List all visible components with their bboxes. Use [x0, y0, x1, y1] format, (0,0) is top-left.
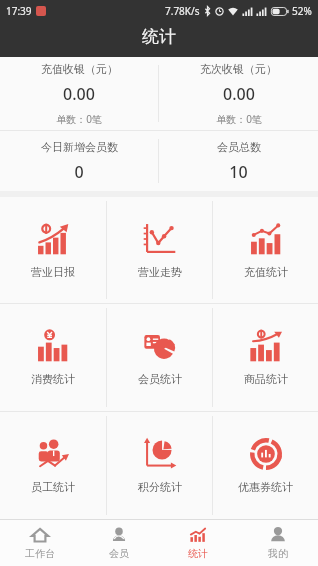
- staticText: 7.78K/s: [165, 4, 200, 18]
- staticText: 充值统计: [244, 265, 288, 279]
- staticText: 17:39: [6, 4, 32, 18]
- button[interactable]: 充值统计: [213, 197, 318, 303]
- staticText: 会员统计: [138, 372, 182, 386]
- staticText: 营业走势: [138, 265, 182, 279]
- staticText: 工作台: [25, 547, 55, 560]
- staticText: 0: [74, 161, 84, 183]
- button[interactable]: 今日新增会员数: [0, 131, 158, 191]
- button[interactable]: 统计: [158, 520, 238, 566]
- staticText: 我的: [268, 547, 288, 560]
- staticText: 充值收银（元）: [41, 62, 118, 76]
- button[interactable]: 商品统计: [213, 304, 318, 411]
- button[interactable]: 会员: [79, 520, 158, 566]
- button[interactable]: 优惠券统计: [213, 412, 318, 519]
- staticText: 0.00: [63, 83, 95, 105]
- staticText: 单数：0笔: [56, 112, 102, 126]
- button[interactable]: 积分统计: [107, 412, 212, 519]
- staticText: 52%: [292, 4, 312, 18]
- staticText: 会员总数: [217, 140, 261, 154]
- staticText: 统计: [142, 26, 176, 47]
- button[interactable]: 营业日报: [0, 197, 106, 303]
- button[interactable]: 消费统计: [0, 304, 106, 411]
- staticText: 10: [229, 161, 248, 183]
- button[interactable]: 我的: [238, 520, 318, 566]
- staticText: 营业日报: [31, 265, 75, 279]
- button[interactable]: 充次收银（元）: [159, 57, 318, 130]
- button[interactable]: 工作台: [0, 520, 79, 566]
- button[interactable]: 充值收银（元）: [0, 57, 158, 130]
- staticText: 0.00: [223, 83, 255, 105]
- staticText: 会员: [109, 547, 129, 560]
- staticText: 统计: [188, 547, 208, 560]
- button[interactable]: 营业走势: [107, 197, 212, 303]
- staticText: 员工统计: [31, 480, 75, 494]
- button[interactable]: 会员统计: [107, 304, 212, 411]
- button[interactable]: 会员总数: [159, 131, 318, 191]
- staticText: 消费统计: [31, 372, 75, 386]
- staticText: 今日新增会员数: [41, 140, 118, 154]
- staticText: 商品统计: [244, 372, 288, 386]
- staticText: 积分统计: [138, 480, 182, 494]
- button[interactable]: 员工统计: [0, 412, 106, 519]
- staticText: 优惠券统计: [238, 480, 293, 494]
- staticText: 充次收银（元）: [200, 62, 277, 76]
- staticText: 单数：0笔: [216, 112, 262, 126]
